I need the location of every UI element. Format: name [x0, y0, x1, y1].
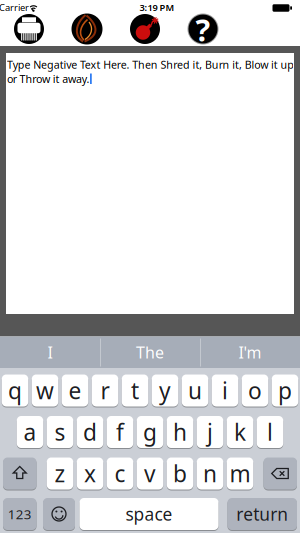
- button[interactable]: t: [122, 374, 148, 407]
- button[interactable]: e: [62, 374, 88, 407]
- button[interactable]: 123: [3, 497, 36, 530]
- button[interactable]: b: [167, 457, 193, 490]
- button[interactable]: m: [227, 457, 253, 490]
- staticText: s: [54, 417, 65, 447]
- staticText: return: [236, 502, 288, 525]
- staticText: p: [278, 375, 292, 405]
- button[interactable]: n: [197, 457, 223, 490]
- button[interactable]: y: [152, 374, 178, 407]
- button[interactable]: space: [79, 497, 218, 530]
- button[interactable]: j: [197, 415, 223, 448]
- staticText: h: [173, 417, 187, 447]
- staticText: d: [83, 417, 97, 447]
- staticText: c: [114, 458, 125, 488]
- staticText: e: [68, 375, 81, 405]
- staticText: j: [207, 417, 213, 447]
- staticText: I: [47, 342, 52, 363]
- button[interactable]: [3, 457, 36, 490]
- button[interactable]: [128, 12, 162, 46]
- staticText: l: [267, 417, 273, 447]
- button[interactable]: c: [107, 457, 133, 490]
- button[interactable]: x: [77, 457, 103, 490]
- button[interactable]: o: [242, 374, 268, 407]
- button[interactable]: l: [257, 415, 283, 448]
- button[interactable]: ?: [186, 12, 220, 46]
- staticText: 123: [8, 505, 32, 523]
- button[interactable]: h: [167, 415, 193, 448]
- staticText: k: [234, 417, 246, 447]
- button[interactable]: I'm: [200, 336, 299, 368]
- button[interactable]: a: [17, 415, 43, 448]
- staticText: f: [116, 417, 124, 447]
- button[interactable]: return: [227, 497, 297, 530]
- staticText: a: [23, 417, 36, 447]
- staticText: t: [131, 375, 139, 405]
- button[interactable]: [70, 12, 104, 46]
- button[interactable]: k: [227, 415, 253, 448]
- button[interactable]: I: [0, 336, 99, 368]
- button[interactable]: [263, 457, 297, 490]
- staticText: o: [248, 375, 262, 405]
- button[interactable]: w: [32, 374, 58, 407]
- staticText: q: [8, 375, 22, 405]
- button[interactable]: f: [107, 415, 133, 448]
- button[interactable]: v: [137, 457, 163, 490]
- button[interactable]: The: [100, 336, 199, 368]
- staticText: z: [54, 458, 65, 488]
- staticText: r: [100, 375, 109, 405]
- staticText: y: [159, 375, 171, 405]
- button[interactable]: u: [182, 374, 208, 407]
- staticText: v: [144, 458, 156, 488]
- staticText: Type Negative Text Here. Then Shred it, …: [7, 57, 294, 72]
- staticText: g: [143, 417, 157, 447]
- staticText: I'm: [238, 342, 261, 363]
- staticText: u: [188, 375, 202, 405]
- staticText: or Throw it away.: [7, 72, 90, 86]
- staticText: The: [136, 342, 164, 363]
- button[interactable]: r: [92, 374, 118, 407]
- button[interactable]: p: [272, 374, 298, 407]
- staticText: b: [173, 458, 187, 488]
- staticText: n: [203, 458, 217, 488]
- button[interactable]: [12, 12, 46, 46]
- button[interactable]: g: [137, 415, 163, 448]
- staticText: Carrier: [0, 1, 29, 14]
- staticText: 3:19 PM: [139, 1, 174, 14]
- button[interactable]: s: [47, 415, 73, 448]
- staticText: m: [229, 458, 250, 488]
- button[interactable]: i: [212, 374, 238, 407]
- staticText: w: [36, 375, 54, 405]
- button[interactable]: q: [2, 374, 28, 407]
- button[interactable]: [43, 497, 75, 530]
- staticText: x: [84, 458, 96, 488]
- staticText: i: [222, 375, 228, 405]
- button[interactable]: d: [77, 415, 103, 448]
- staticText: ?: [195, 9, 210, 50]
- staticText: space: [125, 502, 172, 525]
- button[interactable]: z: [47, 457, 73, 490]
